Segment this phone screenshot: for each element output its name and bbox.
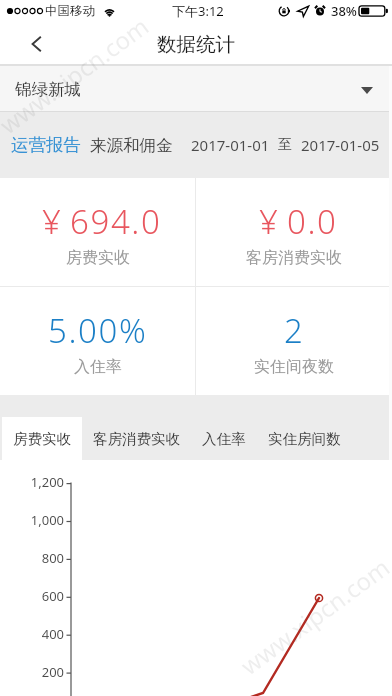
button[interactable]: 客房消费实收 xyxy=(82,417,191,460)
staticText: 实住间夜数 xyxy=(254,357,334,377)
staticText: 800 xyxy=(0,549,64,567)
staticText: 400 xyxy=(0,625,64,643)
staticText: 入住率 xyxy=(202,430,246,448)
staticText: 实住房间数 xyxy=(268,430,341,448)
staticText: www.xipcn.com xyxy=(234,550,392,681)
button[interactable]: 2017-01-05 xyxy=(301,135,380,155)
staticText: 中国移动 xyxy=(45,3,95,19)
button[interactable]: ¥ xyxy=(0,178,195,286)
button[interactable]: 入住率 xyxy=(191,417,257,460)
staticText: 600 xyxy=(0,587,64,605)
staticText: 5.00% xyxy=(48,308,148,353)
staticText: 694.0 xyxy=(70,199,162,244)
button[interactable]: ¥ xyxy=(196,178,392,286)
button[interactable]: 实住房间数 xyxy=(257,417,352,460)
staticText: 数据统计 xyxy=(157,32,235,57)
staticText: www.xipcn.com xyxy=(0,9,154,140)
staticText: 至 xyxy=(278,136,292,154)
staticText: 客房消费实收 xyxy=(93,430,180,448)
other: Select hotel xyxy=(361,87,373,94)
staticText: 0.0 xyxy=(287,199,338,244)
staticText: 房费实收 xyxy=(66,248,130,268)
button[interactable]: 房费实收 xyxy=(2,417,82,460)
button[interactable]: 5.00% xyxy=(0,287,195,395)
staticText: 房费实收 xyxy=(13,430,71,448)
staticText: 38% xyxy=(331,2,357,20)
staticText: 入住率 xyxy=(74,357,122,377)
button[interactable]: 2017-01-01 xyxy=(191,135,270,155)
staticText: 客房消费实收 xyxy=(246,248,342,268)
staticText: ¥ xyxy=(259,199,280,244)
staticText: 锦绿新城 xyxy=(15,79,81,100)
button[interactable]: 来源和佣金 xyxy=(90,135,173,156)
button[interactable]: 运营报告 xyxy=(11,134,81,156)
staticText: 1,000 xyxy=(0,511,64,529)
staticText: 1,200 xyxy=(0,473,64,491)
button[interactable]: 2 xyxy=(196,287,392,395)
staticText: 下午3:12 xyxy=(172,2,224,20)
button[interactable]: 锦绿新城 xyxy=(0,66,392,112)
staticText: ¥ xyxy=(42,199,63,244)
button[interactable]: Back xyxy=(0,22,60,66)
staticText: 2 xyxy=(284,308,305,353)
staticText: 200 xyxy=(0,663,64,681)
